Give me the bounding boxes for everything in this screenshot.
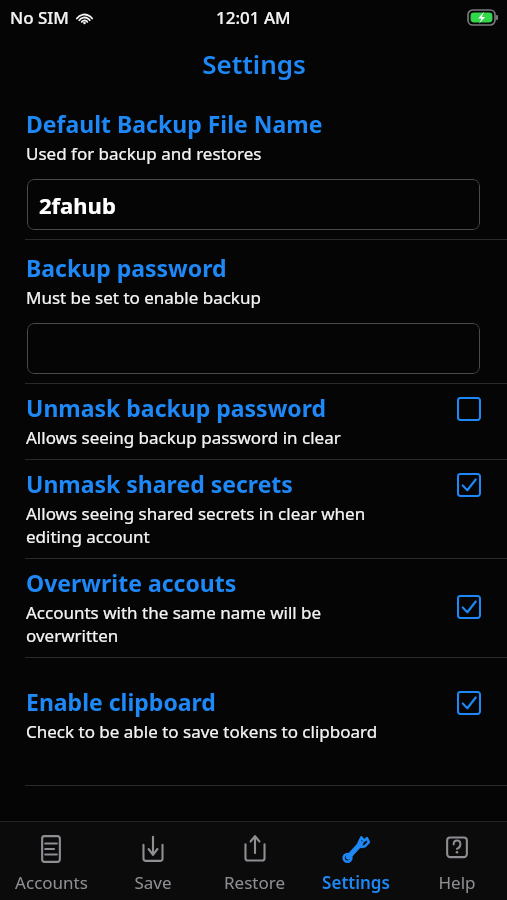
staticText: Unmask backup password <box>26 392 327 423</box>
staticText: Default Backup File Name <box>26 108 323 139</box>
button[interactable]: Save <box>102 822 204 900</box>
staticText: Help <box>438 871 476 894</box>
staticText: Save <box>134 871 172 894</box>
staticText: Settings <box>322 871 390 894</box>
other: Unmask shared secrets <box>457 473 481 497</box>
staticText: Accounts with the same name will be over… <box>26 601 322 647</box>
button[interactable]: Restore <box>204 822 305 900</box>
staticText: Enable clipboard <box>26 686 216 717</box>
button[interactable]: Enable clipboard <box>0 686 507 749</box>
staticText: 2fahub <box>39 190 116 220</box>
button[interactable]: Help <box>406 822 507 900</box>
staticText: No SIM <box>10 6 69 29</box>
button[interactable] <box>27 323 480 374</box>
staticText: Backup password <box>26 252 227 283</box>
staticText: Unmask shared secrets <box>26 468 293 499</box>
other: Enable clipboard <box>457 691 481 715</box>
staticText: Used for backup and restores <box>26 142 262 165</box>
button[interactable]: Unmask shared secrets <box>0 460 507 558</box>
staticText: Check to be able to save tokens to clipb… <box>26 720 378 743</box>
staticText: Must be set to enable backup <box>26 286 261 309</box>
other: Overwrite accouts <box>457 595 481 619</box>
staticText: Allows seeing shared secrets in clear wh… <box>26 502 366 548</box>
button[interactable]: Settings <box>305 822 406 900</box>
button[interactable]: Overwrite accouts <box>0 559 507 657</box>
other: Unmask backup password <box>457 397 481 421</box>
staticText: Allows seeing backup password in clear <box>26 426 341 449</box>
staticText: Restore <box>224 871 285 894</box>
staticText: Overwrite accouts <box>26 567 237 598</box>
button[interactable]: 2fahub <box>27 179 480 230</box>
staticText: 12:01 AM <box>216 6 291 29</box>
staticText: Settings <box>202 46 306 81</box>
staticText: Accounts <box>15 871 88 894</box>
button[interactable]: Accounts <box>0 822 102 900</box>
button[interactable]: Unmask backup password <box>0 384 507 459</box>
